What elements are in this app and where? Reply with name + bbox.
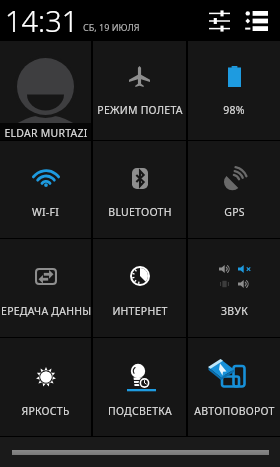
button[interactable]: ЯРКОСТЬ <box>0 338 91 436</box>
staticText: ИНТЕРНЕТ <box>112 304 168 318</box>
button[interactable]: АВТОПОВОРОТ <box>188 338 280 436</box>
staticText: BLUETOOTH <box>108 205 172 219</box>
button[interactable]: BLUETOOTH <box>93 141 186 238</box>
button[interactable]: ELDAR MURTAZI <box>0 41 91 140</box>
staticText: РЕЖИМ ПОЛЕТА <box>97 103 183 117</box>
staticText: ПЕРЕДАЧА ДАННЫХ <box>0 304 98 318</box>
button[interactable]: ПЕРЕДАЧА ДАННЫХ <box>0 239 91 337</box>
staticText: ELDAR MURTAZI <box>4 126 88 140</box>
staticText: АВТОПОВОРОТ <box>194 404 275 418</box>
button[interactable]: GPS <box>188 141 280 238</box>
staticText: 98% <box>223 103 245 117</box>
button[interactable]: ЗВУК <box>188 239 280 337</box>
button[interactable]: Quick settings <box>206 4 233 38</box>
button[interactable]: ПОДСВЕТКА <box>93 338 186 436</box>
button[interactable]: 98% <box>188 41 280 140</box>
staticText: СБ, 19 ИЮЛЯ <box>83 21 140 33</box>
staticText: ЗВУК <box>221 304 248 318</box>
button[interactable]: Notifications <box>243 4 270 38</box>
button[interactable]: WI-FI <box>0 141 91 238</box>
button[interactable]: РЕЖИМ ПОЛЕТА <box>93 41 186 140</box>
button[interactable]: ИНТЕРНЕТ <box>93 239 186 337</box>
staticText: ПОДСВЕТКА <box>108 404 172 418</box>
staticText: 14:31 <box>5 1 79 40</box>
staticText: WI-FI <box>32 205 59 219</box>
staticText: ЯРКОСТЬ <box>21 404 70 418</box>
staticText: GPS <box>224 205 245 219</box>
